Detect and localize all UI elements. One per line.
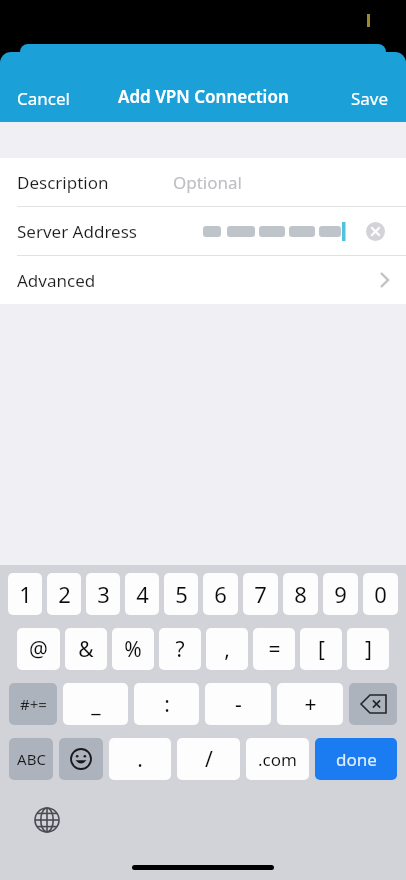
button[interactable]: 6 (203, 573, 238, 615)
staticText: 9 (334, 579, 347, 609)
staticText: 5 (175, 579, 188, 609)
button[interactable]: . (109, 738, 171, 780)
staticText: + (304, 690, 317, 719)
button[interactable]: : (134, 683, 199, 725)
staticText: & (78, 635, 94, 664)
staticText: , (224, 635, 230, 664)
staticText: 1 (19, 579, 32, 609)
staticText: #+= (20, 694, 47, 714)
staticText: - (235, 690, 242, 719)
button[interactable]: Server Address (0, 207, 406, 256)
button[interactable]: 9 (323, 573, 358, 615)
staticText: Cancel (17, 87, 70, 110)
button[interactable]: Change keyboard language (30, 803, 64, 837)
staticText: Add VPN Connection (118, 85, 289, 108)
staticText: @ (29, 635, 48, 664)
button[interactable]: % (112, 628, 154, 670)
button[interactable]: Emoji keyboard (59, 738, 103, 780)
staticText: / (205, 745, 213, 774)
staticText: done (336, 748, 377, 771)
button[interactable]: + (277, 683, 343, 725)
button[interactable]: 5 (164, 573, 198, 615)
staticText: = (268, 635, 281, 664)
button[interactable]: 3 (86, 573, 120, 615)
staticText: Server Address (17, 220, 137, 243)
button[interactable]: 0 (363, 573, 398, 615)
staticText: .com (258, 748, 297, 771)
staticText: 2 (58, 579, 71, 609)
button[interactable]: 7 (243, 573, 278, 615)
staticText: 3 (97, 579, 110, 609)
button[interactable]: #+= (9, 683, 57, 725)
button[interactable]: - (205, 683, 271, 725)
staticText: Advanced (17, 269, 96, 292)
button[interactable]: ? (159, 628, 201, 670)
button[interactable]: .com (246, 738, 309, 780)
staticText: 0 (374, 579, 387, 609)
button[interactable]: Cancel (0, 79, 80, 118)
staticText: : (164, 690, 170, 719)
button[interactable]: 4 (125, 573, 159, 615)
button[interactable]: ABC (9, 738, 53, 780)
button[interactable]: @ (17, 628, 60, 670)
button[interactable]: _ (63, 683, 128, 725)
button[interactable]: = (253, 628, 295, 670)
staticText: _ (91, 690, 101, 719)
button[interactable]: ] (347, 628, 389, 670)
button[interactable]: Save (341, 79, 406, 118)
button[interactable]: [ (300, 628, 342, 670)
staticText: ? (175, 635, 185, 664)
button[interactable]: Clear text (361, 217, 389, 245)
button[interactable]: done (315, 738, 397, 780)
button[interactable]: Backspace (349, 683, 397, 725)
staticText: % (124, 635, 142, 664)
staticText: ABC (17, 749, 46, 769)
button[interactable]: 2 (47, 573, 81, 615)
button[interactable]: Description (0, 158, 406, 207)
staticText: 6 (214, 579, 227, 609)
staticText: ] (365, 635, 372, 664)
button[interactable]: / (177, 738, 240, 780)
staticText: Description (17, 171, 109, 194)
staticText: 8 (294, 579, 307, 609)
staticText: Optional (173, 171, 242, 194)
staticText: 7 (254, 579, 267, 609)
button[interactable]: Advanced (0, 256, 406, 304)
staticText: [ (318, 635, 325, 664)
button[interactable]: 1 (8, 573, 42, 615)
button[interactable]: 8 (283, 573, 318, 615)
staticText: . (137, 745, 143, 774)
staticText: 4 (136, 579, 149, 609)
button[interactable]: & (65, 628, 107, 670)
button[interactable]: , (206, 628, 248, 670)
staticText: Save (351, 87, 389, 110)
